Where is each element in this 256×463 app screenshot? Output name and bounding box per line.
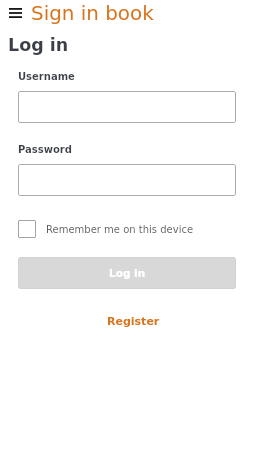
- staticText: Remember me on this device: [46, 224, 194, 236]
- button[interactable]: [18, 91, 236, 123]
- button[interactable]: Open navigation menu: [0, 0, 30, 26]
- staticText: Log in: [109, 267, 146, 279]
- staticText: Password: [18, 144, 72, 156]
- staticText: Log in: [8, 35, 69, 55]
- button[interactable]: Remember me on this device: [18, 220, 194, 238]
- button[interactable]: Sign in book: [31, 2, 154, 25]
- button[interactable]: Register: [107, 315, 160, 328]
- button[interactable]: [18, 164, 236, 196]
- button[interactable]: Log in: [18, 257, 236, 289]
- staticText: Username: [18, 71, 75, 83]
